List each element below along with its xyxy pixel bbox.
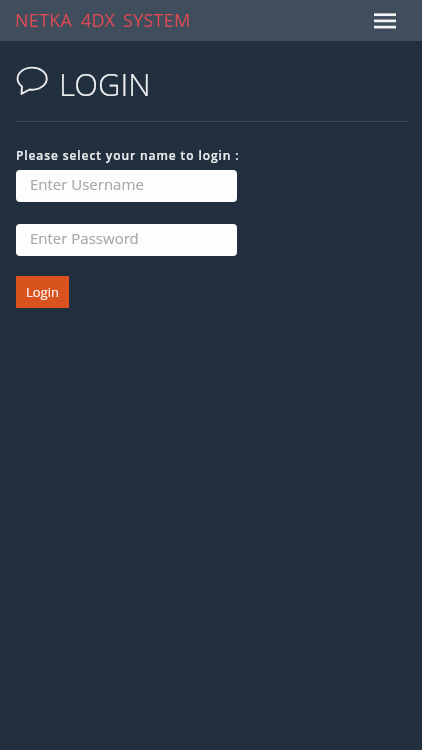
staticText: Login [26,283,59,301]
button[interactable]: Enter Username [16,170,237,202]
staticText: SYSTEM [123,8,191,33]
staticText: Enter Username [30,174,144,194]
staticText: 4DX [81,8,116,33]
button[interactable]: Enter Password [16,224,237,256]
button[interactable]: Login [16,276,69,308]
staticText: Enter Password [30,228,139,248]
staticText: NETKA [15,8,73,33]
staticText: Please select your name to login : [16,147,240,163]
button[interactable]: Open navigation menu [370,6,400,36]
staticText: LOGIN [59,63,151,105]
button[interactable]: NETKA [15,8,191,33]
